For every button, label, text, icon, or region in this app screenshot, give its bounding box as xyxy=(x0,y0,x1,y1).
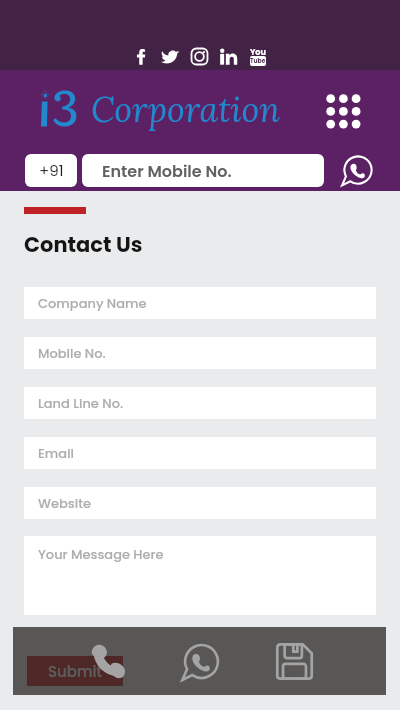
staticText: You xyxy=(250,47,266,58)
button[interactable]: Twitter xyxy=(161,47,180,66)
button[interactable]: Menu xyxy=(324,92,358,126)
button[interactable]: Email xyxy=(24,437,376,469)
staticText: Website xyxy=(38,494,92,512)
button[interactable]: Instagram xyxy=(190,47,209,66)
staticText: Submit xyxy=(48,661,103,682)
staticText: Land Line No. xyxy=(38,394,124,412)
button[interactable]: LinkedIn xyxy=(219,47,238,66)
button[interactable]: +91 xyxy=(25,154,77,187)
staticText: 3 xyxy=(52,67,80,141)
button[interactable]: Website xyxy=(24,487,376,519)
staticText: Tube xyxy=(250,57,266,65)
button[interactable]: Save xyxy=(274,641,315,682)
button[interactable]: Mobile No. xyxy=(24,337,376,369)
staticText: Corporation xyxy=(91,88,281,132)
button[interactable]: Land Line No. xyxy=(24,387,376,419)
staticText: Your Message Here xyxy=(38,545,164,563)
staticText: Enter Mobile No. xyxy=(102,160,232,182)
staticText: Mobile No. xyxy=(38,344,106,362)
staticText: Contact Us xyxy=(24,230,143,259)
button[interactable]: YouTube xyxy=(248,47,267,66)
staticText: Email xyxy=(38,444,74,462)
button[interactable]: WhatsApp xyxy=(341,153,375,187)
button[interactable]: Company Name xyxy=(24,287,376,319)
button[interactable]: Your Message Here xyxy=(24,536,376,615)
button[interactable]: Call xyxy=(88,641,129,682)
button[interactable]: Submit xyxy=(27,656,123,686)
staticText: Company Name xyxy=(38,294,147,312)
button[interactable]: Facebook xyxy=(132,47,151,66)
button[interactable]: WhatsApp xyxy=(181,641,222,682)
button[interactable]: Enter Mobile No. xyxy=(82,154,324,187)
staticText: +91 xyxy=(39,160,64,181)
